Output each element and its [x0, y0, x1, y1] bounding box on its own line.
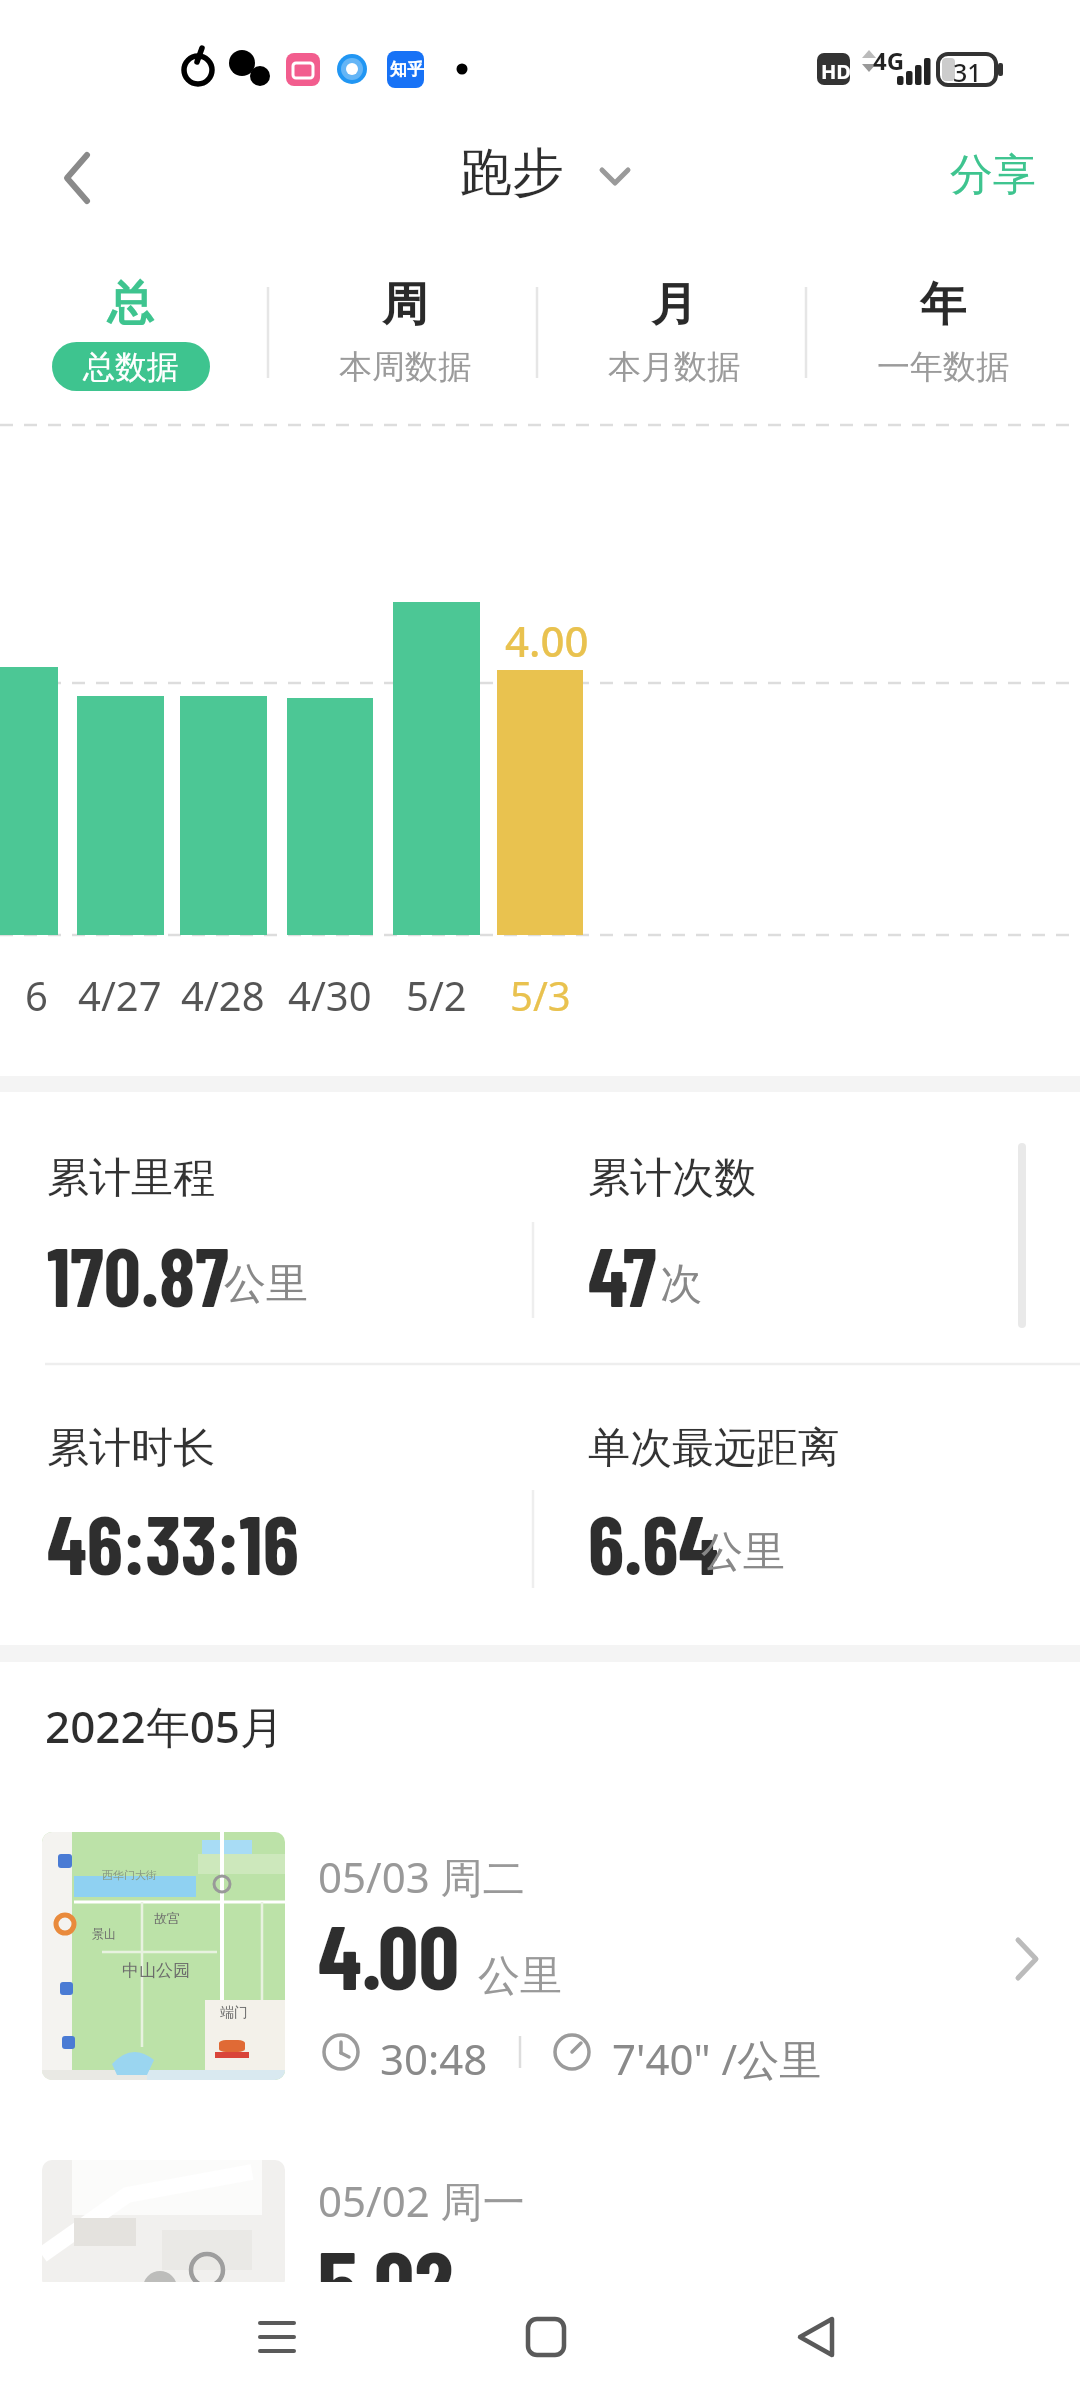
staticText: 46:33:16: [47, 1493, 299, 1591]
button[interactable]: [45, 145, 115, 215]
staticText: 5.02: [318, 2226, 454, 2334]
button[interactable]: 分享: [940, 140, 1050, 210]
staticText: 周: [382, 276, 428, 334]
staticText: 05/02 周一: [318, 2172, 525, 2229]
staticText: 公里: [224, 1258, 308, 1311]
staticText: 跑步: [460, 140, 564, 206]
staticText: 6: [25, 968, 48, 1022]
staticText: 4.00: [318, 1900, 460, 2008]
button[interactable]: 总: [30, 270, 240, 410]
button[interactable]: 月: [539, 270, 808, 410]
staticText: 4G: [873, 44, 905, 77]
staticText: 故宫: [154, 1910, 180, 1926]
staticText: 累计次数: [588, 1152, 756, 1205]
staticText: 累计时长: [47, 1422, 215, 1475]
button[interactable]: [496, 2285, 596, 2385]
staticText: 4/28: [181, 968, 265, 1022]
staticText: 30:48: [380, 2030, 488, 2087]
staticText: 本月数据: [608, 346, 740, 388]
staticText: 4/30: [288, 968, 372, 1022]
staticText: 知乎: [390, 59, 424, 80]
staticText: 景山: [92, 1926, 116, 1941]
staticText: 47: [588, 1225, 657, 1323]
staticText: 月: [651, 276, 697, 334]
staticText: 7'40" /公里: [612, 2030, 822, 2087]
button[interactable]: 年: [808, 270, 1077, 410]
staticText: 05/03 周二: [318, 1848, 525, 1905]
staticText: 总: [107, 275, 153, 333]
staticText: 2022年05月: [45, 1696, 285, 1756]
staticText: 单次最远距离: [588, 1422, 840, 1475]
staticText: 公里: [701, 1526, 785, 1579]
staticText: 5/3: [510, 968, 571, 1022]
staticText: 5/2: [406, 968, 467, 1022]
staticText: 4.00: [505, 612, 589, 669]
staticText: 4/27: [78, 968, 162, 1022]
staticText: 次: [660, 1258, 702, 1311]
button[interactable]: [227, 2285, 327, 2385]
staticText: HD: [821, 58, 851, 85]
staticText: 170.87: [47, 1225, 229, 1323]
staticText: 西华门大街: [102, 1868, 157, 1882]
button[interactable]: 05/02 周一: [0, 2140, 1080, 2282]
staticText: 中山公园: [122, 1960, 190, 1981]
staticText: 31: [953, 55, 982, 89]
staticText: 6.64: [588, 1493, 719, 1591]
staticText: 累计里程: [47, 1152, 215, 1205]
button[interactable]: 中山公园: [0, 1810, 1080, 2110]
staticText: 年: [920, 276, 966, 334]
staticText: 公里: [478, 1950, 562, 2003]
button[interactable]: [766, 2285, 866, 2385]
staticText: 本周数据: [339, 346, 471, 388]
button[interactable]: 跑步: [430, 140, 650, 215]
staticText: 端门: [220, 2004, 248, 2022]
staticText: 一年数据: [877, 346, 1009, 388]
staticText: 分享: [950, 148, 1036, 202]
staticText: 总数据: [83, 347, 179, 387]
button[interactable]: 周: [270, 270, 539, 410]
